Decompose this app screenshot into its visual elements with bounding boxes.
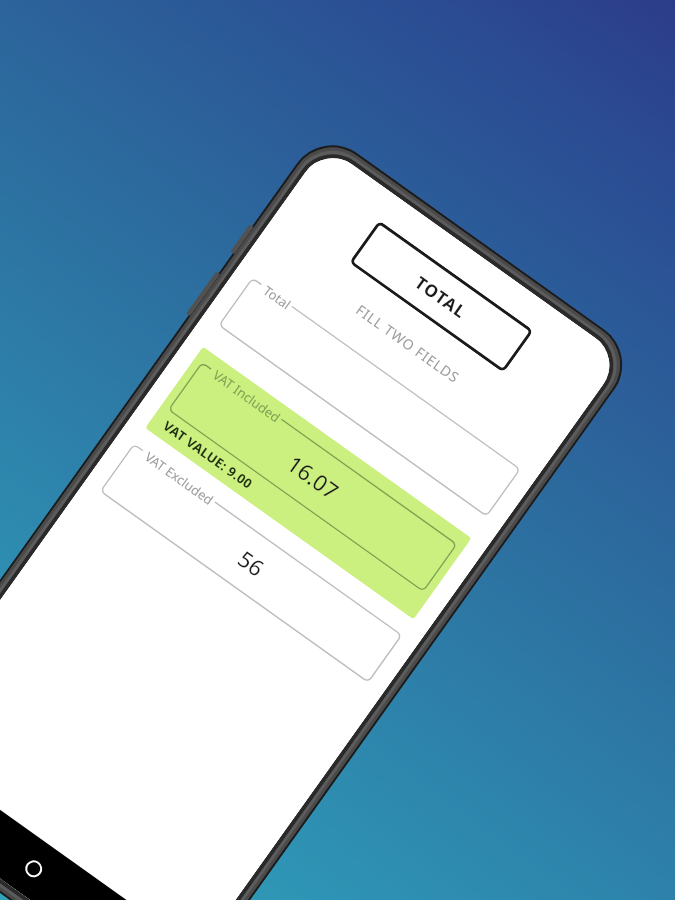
staticText: VAT Included (209, 366, 284, 426)
staticText: VAT Excluded (141, 448, 218, 509)
staticText: FILL TWO FIELDS (253, 229, 562, 457)
staticText: TOTAL (411, 271, 472, 324)
button[interactable] (218, 277, 521, 517)
button[interactable]: TOTAL (349, 220, 534, 373)
staticText: Total (260, 281, 295, 314)
staticText: 16.07 (281, 448, 345, 505)
button[interactable]: 16.07 (168, 362, 458, 592)
staticText: 56 (232, 543, 271, 583)
button[interactable]: Home (6, 840, 61, 896)
button[interactable]: 56 (100, 443, 402, 683)
staticText: VAT VALUE: 9.00 (160, 416, 256, 493)
